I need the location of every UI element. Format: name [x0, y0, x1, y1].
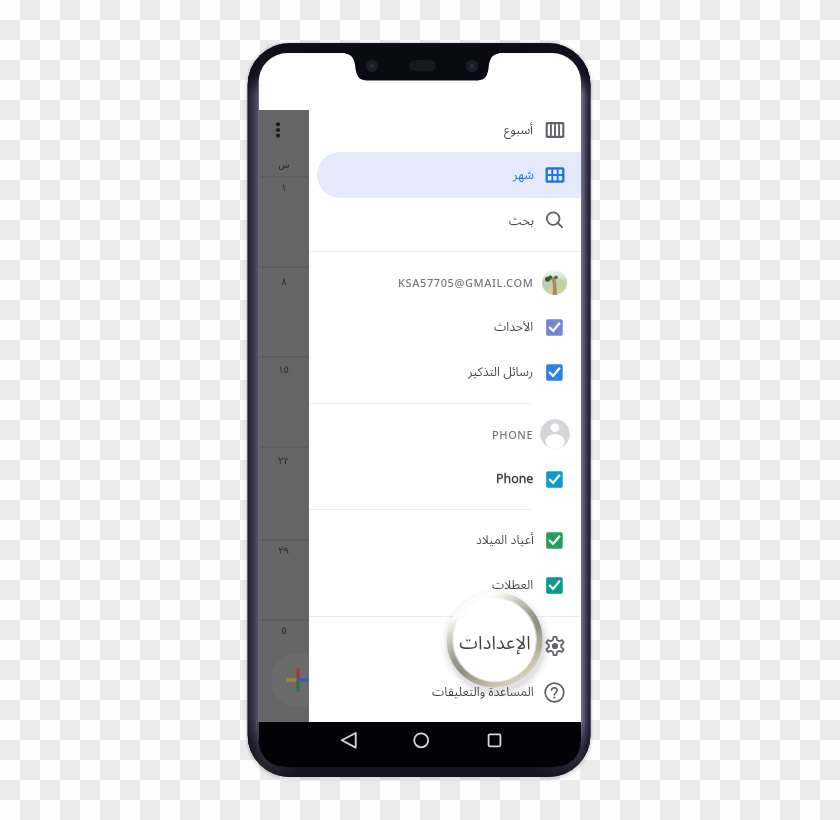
staticText: ٢٢	[278, 455, 289, 467]
button[interactable]: شهر	[309, 153, 581, 197]
staticText: ٢٩	[278, 545, 289, 557]
staticText: س	[278, 159, 290, 170]
button[interactable]: More options	[262, 114, 294, 146]
button[interactable]: KSA57705@GMAIL.COM	[309, 260, 581, 304]
staticText: المساعدة والتعليقات	[432, 679, 534, 705]
staticText: بحث	[509, 208, 534, 234]
staticText: KSA57705@GMAIL.COM	[398, 275, 534, 290]
button[interactable]: رسائل التذكير	[309, 350, 581, 394]
button[interactable]: Phone	[309, 457, 581, 501]
staticText: شهر	[513, 162, 534, 188]
button[interactable]: العطلات	[309, 563, 581, 607]
staticText: العطلات	[492, 572, 534, 598]
staticText: ٥	[281, 625, 287, 637]
staticText: الإعدادات	[486, 633, 534, 659]
staticText: Phone	[496, 466, 534, 492]
button[interactable]: الأحداث	[309, 305, 581, 349]
staticText: الإعدادات	[459, 623, 531, 657]
staticText: الأحداث	[494, 314, 534, 340]
staticText: رسائل التذكير	[468, 359, 534, 385]
staticText: ٨	[281, 276, 287, 288]
button[interactable]: PHONE	[309, 412, 581, 456]
button[interactable]: المساعدة والتعليقات	[309, 670, 581, 714]
staticText: PHONE	[492, 427, 534, 442]
staticText: ١	[281, 182, 287, 194]
staticText: أسبوع	[504, 117, 534, 143]
button[interactable]: الإعدادات	[309, 624, 581, 668]
button[interactable]: أعياد الميلاد	[309, 518, 581, 562]
staticText: ١٥	[278, 364, 289, 376]
staticText: أعياد الميلاد	[476, 527, 534, 553]
button[interactable]: Create event	[271, 653, 325, 707]
button[interactable]: أسبوع	[309, 110, 581, 152]
button[interactable]: بحث	[309, 199, 581, 243]
